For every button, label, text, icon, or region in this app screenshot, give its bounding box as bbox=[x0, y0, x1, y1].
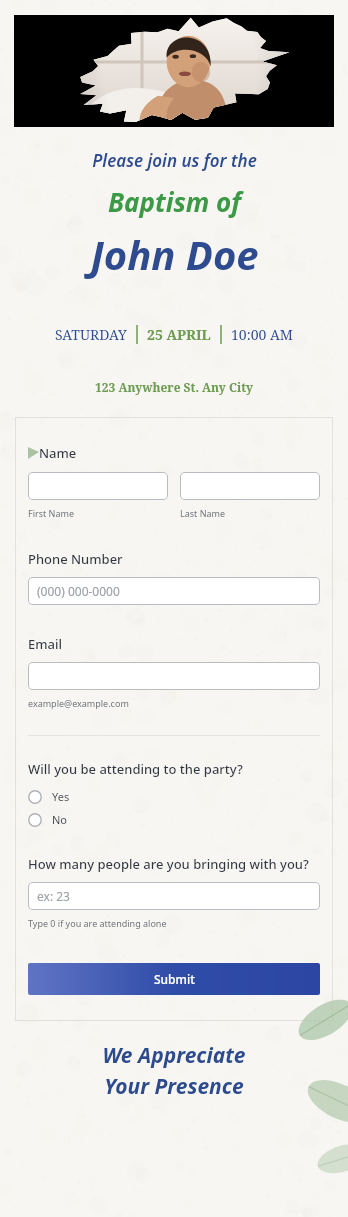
staticText: Email bbox=[28, 635, 63, 653]
button[interactable] bbox=[180, 472, 320, 500]
staticText: Will you be attending to the party? bbox=[28, 760, 243, 778]
staticText: Yes bbox=[52, 789, 70, 804]
staticText: example@example.com bbox=[28, 697, 129, 709]
staticText: Type 0 if you are attending alone bbox=[28, 917, 167, 929]
button[interactable]: (000) 000-0000 bbox=[28, 577, 320, 605]
staticText: ex: 23 bbox=[37, 888, 70, 904]
button[interactable] bbox=[28, 472, 168, 500]
staticText: (000) 000-0000 bbox=[37, 583, 120, 599]
staticText: 123 Anywhere St. Any City bbox=[95, 379, 253, 395]
staticText: No bbox=[52, 812, 68, 827]
staticText: 25 APRIL bbox=[147, 325, 211, 344]
staticText: 10:00 AM bbox=[231, 325, 293, 344]
button[interactable]: No bbox=[28, 810, 68, 829]
staticText: Last Name bbox=[180, 507, 226, 519]
staticText: Submit bbox=[154, 971, 195, 987]
staticText: Baptism of bbox=[108, 184, 241, 219]
button[interactable]: ex: 23 bbox=[28, 882, 320, 910]
staticText: John Doe bbox=[90, 227, 259, 281]
button[interactable]: Submit bbox=[28, 963, 320, 995]
button[interactable]: Yes bbox=[28, 787, 70, 806]
button[interactable] bbox=[28, 662, 320, 690]
staticText: We Appreciate bbox=[102, 1041, 246, 1070]
staticText: Please join us for the bbox=[92, 149, 257, 172]
staticText: First Name bbox=[28, 507, 74, 519]
staticText: Your Presence bbox=[104, 1072, 244, 1101]
staticText: Name bbox=[39, 444, 77, 462]
staticText: Phone Number bbox=[28, 550, 123, 568]
staticText: SATURDAY bbox=[55, 325, 127, 344]
staticText: How many people are you bringing with yo… bbox=[28, 855, 309, 873]
